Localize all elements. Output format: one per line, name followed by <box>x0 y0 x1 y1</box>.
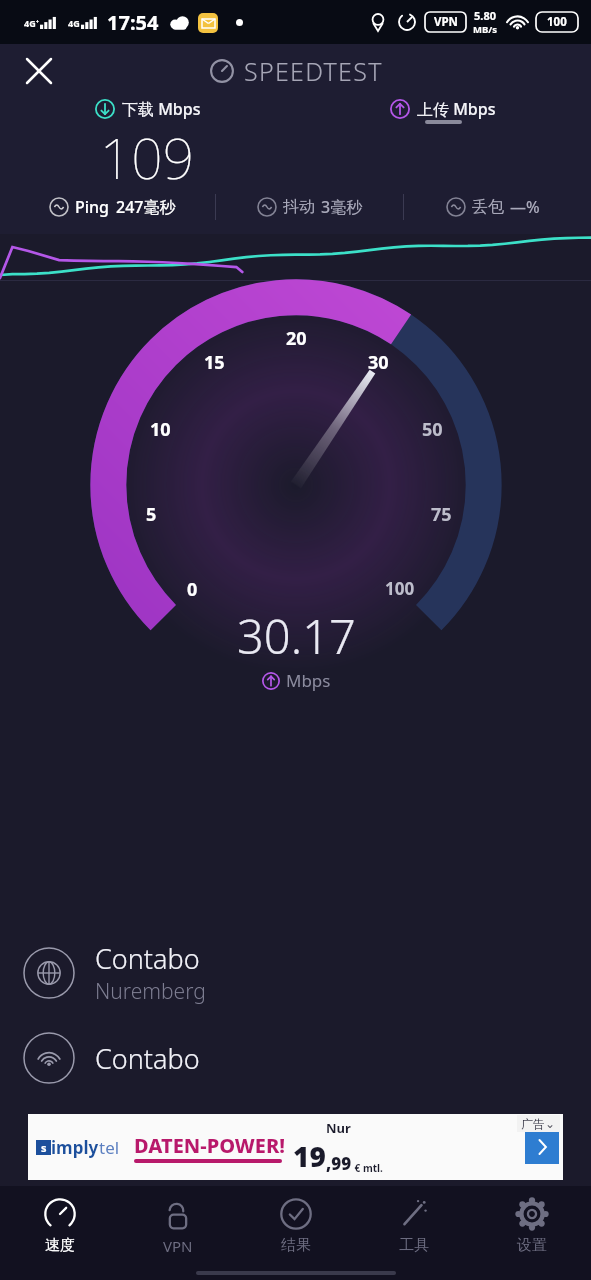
staticText: 速度 <box>45 1236 75 1255</box>
staticText: € mtl. <box>352 1161 383 1175</box>
staticText: DATEN-POWER! <box>134 1132 285 1159</box>
button[interactable]: 设置 <box>473 1186 591 1266</box>
staticText: 247毫秒 <box>116 196 176 218</box>
staticText: 100 <box>547 14 567 30</box>
button[interactable]: Close <box>16 48 62 94</box>
staticText: 广告⌄ <box>521 1116 556 1131</box>
staticText: Mbps <box>286 669 331 692</box>
staticText: 工具 <box>399 1236 429 1255</box>
button[interactable]: 速度 <box>0 1186 119 1266</box>
staticText: 109 <box>100 120 195 194</box>
staticText: 丢包 <box>472 197 504 217</box>
staticText: 15 <box>204 350 225 375</box>
button[interactable]: Ping <box>10 196 215 218</box>
staticText: tel <box>99 1136 120 1159</box>
staticText: SPEEDTEST <box>244 54 383 88</box>
staticText: Nuremberg <box>95 977 206 1006</box>
staticText: 50 <box>422 417 443 442</box>
staticText: 30.17 <box>237 604 356 668</box>
staticText: Contabo <box>95 1040 200 1077</box>
staticText: Nur <box>326 1119 351 1137</box>
staticText: 结果 <box>281 1236 311 1255</box>
staticText: VPN <box>434 14 458 30</box>
staticText: 20 <box>286 326 307 351</box>
button[interactable]: 抖动 <box>216 196 403 218</box>
button[interactable]: 丢包 <box>404 196 581 218</box>
staticText: 0 <box>187 577 198 602</box>
button[interactable]: Contabo <box>23 1028 591 1088</box>
staticText: 设置 <box>517 1236 547 1255</box>
staticText: —% <box>510 196 540 218</box>
staticText: 抖动 <box>283 197 315 217</box>
staticText: VPN <box>163 1236 193 1256</box>
staticText: 3毫秒 <box>321 196 363 218</box>
button[interactable]: 工具 <box>355 1186 473 1266</box>
staticText: 75 <box>431 502 452 527</box>
staticText: 上传 Mbps <box>417 98 496 120</box>
staticText: Ping <box>75 196 110 218</box>
staticText: 19 <box>293 1137 326 1175</box>
staticText: imply <box>51 1136 99 1159</box>
staticText: ,99 <box>326 1152 352 1175</box>
staticText: MB/s <box>473 23 497 36</box>
staticText: 4G <box>68 17 80 29</box>
staticText: 10 <box>150 417 171 442</box>
button[interactable]: 结果 <box>237 1186 355 1266</box>
button[interactable]: VPN <box>119 1186 237 1266</box>
staticText: s <box>41 1140 47 1155</box>
staticText: 5.80 <box>474 8 496 23</box>
button[interactable]: Contabo <box>23 936 591 1010</box>
staticText: 5 <box>146 502 157 527</box>
staticText: 30 <box>368 350 389 375</box>
staticText: 17:54 <box>107 9 159 36</box>
staticText: 4G⁺ <box>24 17 39 29</box>
staticText: Contabo <box>95 940 200 977</box>
staticText: 100 <box>385 577 415 600</box>
staticText: 下载 Mbps <box>122 98 201 120</box>
button[interactable]: Advertisement <box>28 1114 563 1180</box>
